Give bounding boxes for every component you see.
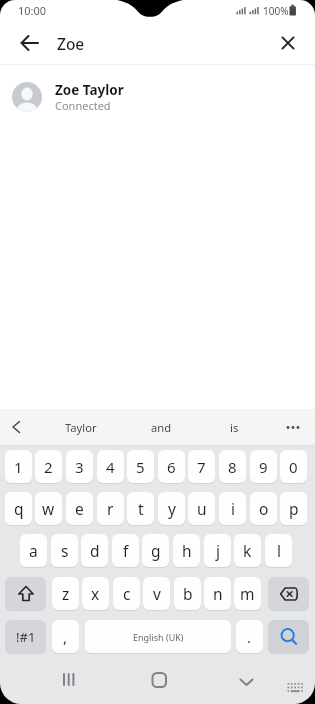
button[interactable] (274, 29, 302, 57)
staticText: Connected (55, 98, 111, 113)
button[interactable]: m (234, 577, 261, 610)
button[interactable] (233, 667, 261, 695)
button[interactable]: , (52, 620, 79, 653)
button[interactable]: a (20, 534, 47, 567)
staticText: r (107, 498, 114, 519)
staticText: and (151, 420, 172, 435)
staticText: . (247, 627, 252, 647)
button[interactable]: q (5, 492, 32, 525)
button[interactable]: f (112, 534, 139, 567)
staticText: English (UK) (133, 631, 184, 643)
button[interactable]: d (81, 534, 108, 567)
button[interactable]: r (97, 492, 124, 525)
staticText: e (75, 498, 84, 519)
button[interactable]: Taylor (36, 409, 125, 445)
staticText: 5 (136, 457, 145, 477)
staticText: 0 (289, 457, 298, 477)
button[interactable]: !#1 (5, 620, 46, 653)
button[interactable]: 3 (66, 450, 93, 483)
button[interactable]: is (198, 409, 271, 445)
button[interactable]: 9 (250, 450, 277, 483)
button[interactable]: 5 (127, 450, 154, 483)
staticText: 8 (228, 457, 237, 477)
button[interactable] (55, 665, 83, 693)
staticText: j (216, 540, 220, 561)
button[interactable] (145, 665, 173, 693)
button[interactable]: Zoe Taylor (0, 70, 315, 124)
button[interactable] (5, 577, 46, 610)
staticText: 3 (75, 457, 84, 477)
staticText: z (62, 583, 70, 604)
button[interactable]: 0 (280, 450, 307, 483)
button[interactable] (284, 680, 308, 698)
button[interactable]: y (158, 492, 185, 525)
button[interactable]: x (82, 577, 109, 610)
staticText: Zoe (57, 33, 85, 54)
button[interactable]: 1 (5, 450, 32, 483)
staticText: 10:00 (18, 3, 47, 18)
staticText: 2 (44, 457, 53, 477)
staticText: p (289, 498, 299, 519)
staticText: w (42, 498, 55, 519)
button[interactable]: l (265, 534, 292, 567)
button[interactable]: k (234, 534, 261, 567)
button[interactable]: s (51, 534, 78, 567)
button[interactable]: w (35, 492, 62, 525)
button[interactable]: . (236, 620, 263, 653)
button[interactable]: t (127, 492, 154, 525)
button[interactable] (268, 577, 309, 610)
button[interactable]: and (125, 409, 198, 445)
staticText: b (183, 583, 193, 604)
button[interactable]: o (250, 492, 277, 525)
staticText: x (91, 583, 100, 604)
button[interactable] (6, 419, 26, 435)
staticText: 4 (106, 457, 115, 477)
staticText: f (123, 540, 129, 561)
staticText: Taylor (65, 420, 97, 435)
button[interactable]: h (173, 534, 200, 567)
button[interactable]: z (52, 577, 79, 610)
button[interactable]: p (280, 492, 307, 525)
staticText: l (277, 540, 281, 561)
staticText: c (123, 583, 131, 604)
button[interactable] (268, 620, 309, 653)
staticText: m (240, 583, 255, 604)
staticText: t (138, 498, 144, 519)
staticText: g (151, 540, 161, 561)
staticText: 100% (263, 4, 289, 18)
staticText: s (61, 540, 69, 561)
button[interactable]: English (UK) (85, 620, 231, 653)
button[interactable]: c (113, 577, 140, 610)
staticText: Zoe Taylor (55, 81, 124, 99)
staticText: n (213, 583, 223, 604)
button[interactable]: b (174, 577, 201, 610)
button[interactable]: i (219, 492, 246, 525)
staticText: v (153, 583, 161, 604)
button[interactable]: 4 (97, 450, 124, 483)
button[interactable]: v (143, 577, 170, 610)
staticText: y (168, 498, 176, 519)
button[interactable]: g (142, 534, 169, 567)
button[interactable]: 8 (219, 450, 246, 483)
button[interactable]: j (204, 534, 231, 567)
button[interactable]: n (204, 577, 231, 610)
staticText: h (182, 540, 192, 561)
button[interactable] (12, 33, 46, 55)
staticText: is (230, 420, 239, 435)
staticText: k (243, 540, 252, 561)
staticText: q (14, 498, 24, 519)
staticText: 1 (14, 457, 23, 477)
staticText: 7 (197, 457, 206, 477)
button[interactable]: u (188, 492, 215, 525)
staticText: 6 (167, 457, 176, 477)
button[interactable]: 2 (35, 450, 62, 483)
button[interactable]: 6 (158, 450, 185, 483)
staticText: u (197, 498, 207, 519)
staticText: , (63, 627, 68, 647)
button[interactable] (271, 409, 315, 445)
staticText: 9 (259, 457, 268, 477)
button[interactable]: 7 (188, 450, 215, 483)
button[interactable]: e (66, 492, 93, 525)
staticText: o (259, 498, 269, 519)
staticText: d (90, 540, 100, 561)
